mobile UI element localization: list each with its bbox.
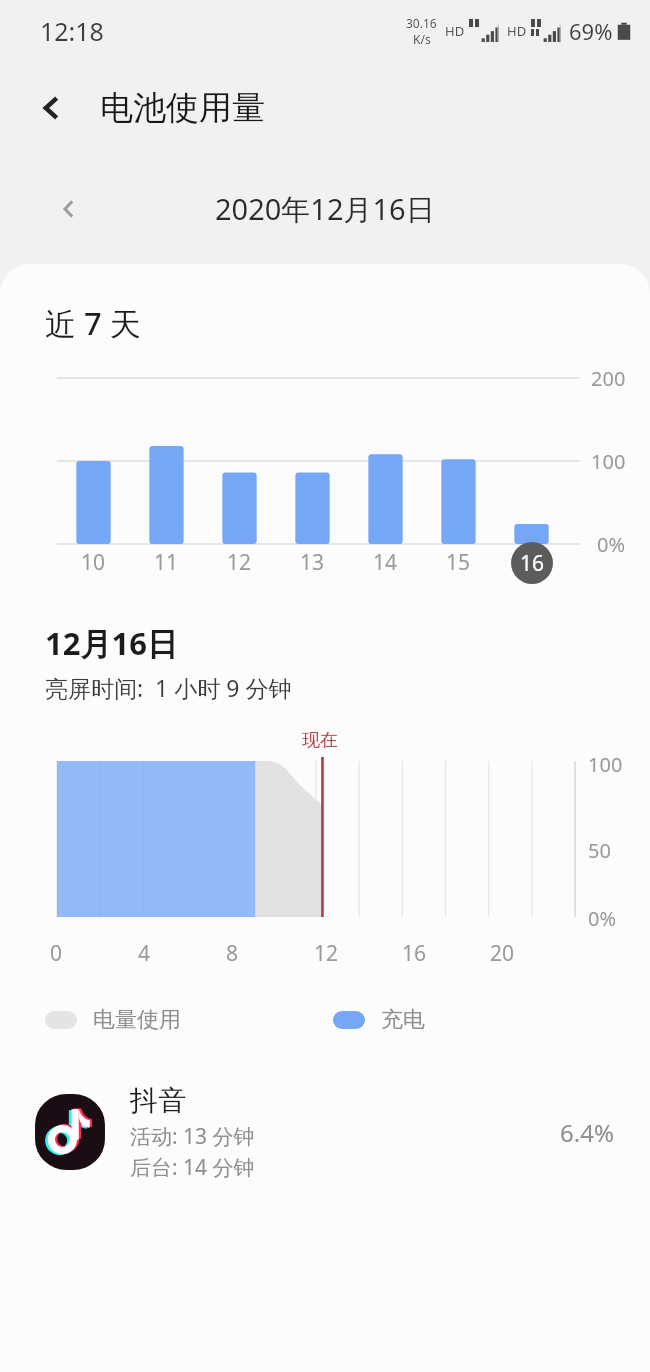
button[interactable]: Previous day <box>42 182 96 236</box>
other: 抖音 <box>32 1094 108 1170</box>
staticText: 11 <box>154 548 179 577</box>
staticText: 电量使用 <box>93 1006 181 1034</box>
staticText: 12 <box>227 548 252 577</box>
button[interactable]: 16 <box>511 542 553 584</box>
button[interactable]: 电量使用 <box>45 1006 181 1034</box>
staticText: 12:18 <box>40 14 104 48</box>
staticText: 现在 <box>302 729 338 752</box>
button[interactable]: 11 <box>148 542 185 583</box>
staticText: 12月16日 <box>45 622 178 664</box>
staticText: 0% <box>588 905 617 932</box>
staticText: HD <box>445 22 465 40</box>
staticText: 14 <box>373 548 398 577</box>
button[interactable]: 抖音 <box>0 1067 650 1197</box>
staticText: 活动: 13 分钟 <box>130 1122 255 1151</box>
staticText: 6.4% <box>560 1116 614 1149</box>
button[interactable]: 充电 <box>333 1006 425 1034</box>
staticText: 12 <box>314 939 339 968</box>
button[interactable]: 14 <box>367 542 404 583</box>
staticText: 20 <box>490 939 515 968</box>
staticText: 50 <box>588 837 611 864</box>
staticText: 后台: 14 分钟 <box>130 1153 255 1182</box>
button[interactable]: 10 <box>75 542 112 583</box>
staticText: 电池使用量 <box>100 87 265 129</box>
staticText: 0 <box>50 939 63 968</box>
staticText: 69% <box>569 16 613 46</box>
staticText: 8 <box>226 939 239 968</box>
staticText: 200 <box>591 365 626 392</box>
button[interactable]: Back <box>22 78 82 138</box>
staticText: 100 <box>591 448 626 475</box>
staticText: 抖音 <box>130 1083 186 1118</box>
button[interactable]: 12 <box>221 542 258 583</box>
staticText: 15 <box>446 548 471 577</box>
staticText: 充电 <box>381 1006 425 1034</box>
staticText: 10 <box>81 548 106 577</box>
button[interactable]: 15 <box>440 542 477 583</box>
staticText: 16 <box>402 939 427 968</box>
staticText: 16 <box>520 549 545 578</box>
staticText: 亮屏时间: 1 小时 9 分钟 <box>45 672 292 703</box>
staticText: 4 <box>138 939 151 968</box>
staticText: 100 <box>588 751 623 778</box>
staticText: K/s <box>413 31 431 47</box>
staticText: 0% <box>597 531 626 558</box>
staticText: 2020年12月16日 <box>215 189 435 229</box>
staticText: 近 7 天 <box>45 302 141 344</box>
staticText: 13 <box>300 548 325 577</box>
staticText: HD <box>507 22 527 40</box>
button[interactable]: 13 <box>294 542 331 583</box>
staticText: 30.16 <box>406 15 437 31</box>
